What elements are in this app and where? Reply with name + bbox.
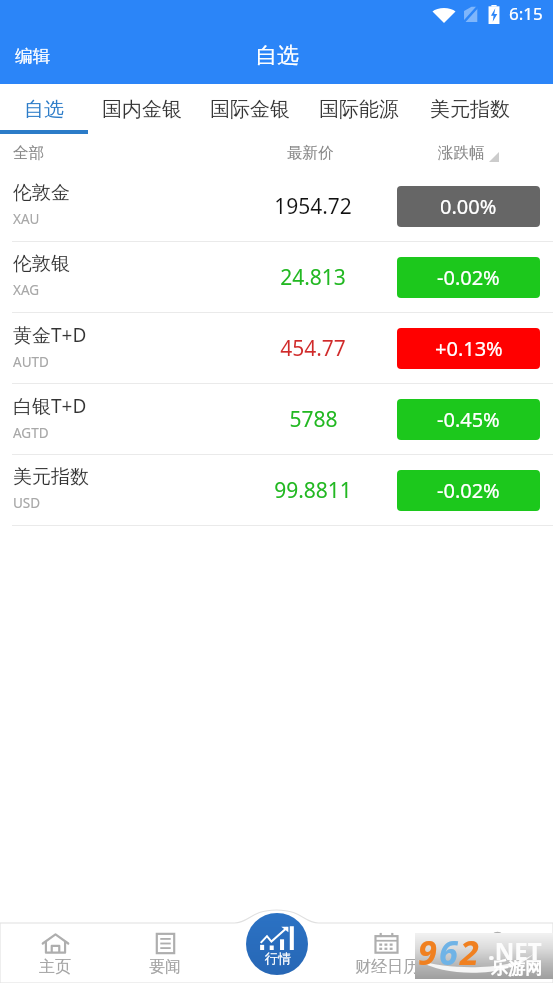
staticText: 2 [460,929,479,975]
staticText: 6 [439,929,458,975]
button[interactable]: 要闻 [110,906,220,983]
button[interactable]: 伦敦银 [0,242,553,313]
staticText: AGTD [13,424,49,442]
staticText: 国内金银 [102,97,182,122]
button[interactable]: 美元指数 [413,84,526,134]
staticText: -0.45% [437,406,500,433]
staticText: 美元指数 [430,97,510,122]
button[interactable]: 主页 [0,906,110,983]
button[interactable]: 编辑 [0,28,65,84]
staticText: 5788 [289,405,338,434]
staticText: 涨跌幅 [438,143,485,163]
staticText: 99.8811 [274,476,352,505]
button[interactable]: 行情 [246,913,308,975]
staticText: 0.00% [440,193,497,220]
staticText: 全部 [13,143,44,163]
staticText: 财经日历 [355,957,419,977]
button[interactable]: 白银T+D [0,384,553,455]
button[interactable]: 黄金T+D [0,313,553,384]
button[interactable]: 自选 [0,84,88,134]
button[interactable]: 国际能源 [304,84,413,134]
staticText: 白银T+D [13,393,87,419]
staticText: 伦敦银 [13,252,70,276]
button[interactable]: 国际金银 [195,84,304,134]
staticText: 乐游网 [491,958,542,979]
button[interactable]: 财经日历 [331,906,442,983]
staticText: 国际能源 [319,97,399,122]
staticText: 主页 [39,957,71,977]
staticText: 伦敦金 [13,181,70,205]
staticText: 我的 [482,957,514,977]
staticText: .NET [488,934,542,967]
staticText: 要闻 [149,957,181,977]
staticText: +0.13% [435,335,503,362]
button[interactable]: 我的 [442,906,553,983]
staticText: 编辑 [15,45,50,67]
staticText: 行情 [265,950,291,966]
staticText: 自选 [24,97,64,122]
staticText: 24.813 [280,263,346,292]
staticText: 最新价 [287,143,334,163]
staticText: AUTD [13,353,49,371]
staticText: -0.02% [437,264,500,291]
button[interactable]: 伦敦金 [0,171,553,242]
staticText: 国际金银 [210,97,290,122]
staticText: XAU [13,210,40,228]
staticText: USD [13,494,41,512]
button[interactable]: 美元指数 [0,455,553,526]
staticText: 黄金T+D [13,322,87,348]
staticText: 美元指数 [13,465,89,489]
staticText: 1954.72 [274,192,352,221]
button[interactable]: 国内金银 [88,84,195,134]
staticText: -0.02% [437,477,500,504]
staticText: 6:15 [509,2,543,25]
staticText: 454.77 [280,334,346,363]
staticText: 9 [418,929,437,975]
staticText: XAG [13,281,40,299]
staticText: 自选 [255,42,299,70]
